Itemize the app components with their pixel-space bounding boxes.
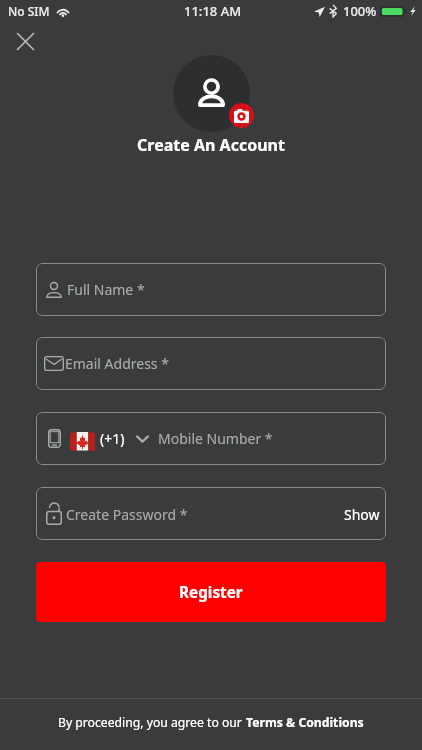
button[interactable]: Create Password *	[36, 487, 386, 540]
staticText: No SIM	[8, 3, 50, 19]
staticText: 100%	[343, 2, 377, 20]
staticText: (+1)	[100, 429, 125, 448]
staticText: 11:18 AM	[184, 2, 242, 20]
button[interactable]: Add profile photo	[173, 55, 250, 132]
button[interactable]: Show	[344, 505, 380, 524]
button[interactable]: Take photo	[229, 103, 254, 128]
button[interactable]: Terms & Conditions	[246, 714, 364, 731]
staticText: Email Address *	[65, 354, 169, 373]
staticText: Create Password *	[66, 505, 188, 524]
button[interactable]: Full Name *	[36, 263, 386, 316]
button[interactable]: Email Address *	[36, 337, 386, 390]
staticText: By proceeding, you agree to our	[58, 714, 246, 731]
button[interactable]: (+1)	[36, 412, 386, 465]
staticText: Full Name *	[67, 280, 145, 299]
button[interactable]: Register	[36, 562, 386, 622]
button[interactable]: Close	[9, 25, 42, 58]
staticText: Create An Account	[0, 134, 422, 156]
staticText: Mobile Number *	[158, 429, 273, 448]
staticText: Register	[179, 582, 243, 603]
